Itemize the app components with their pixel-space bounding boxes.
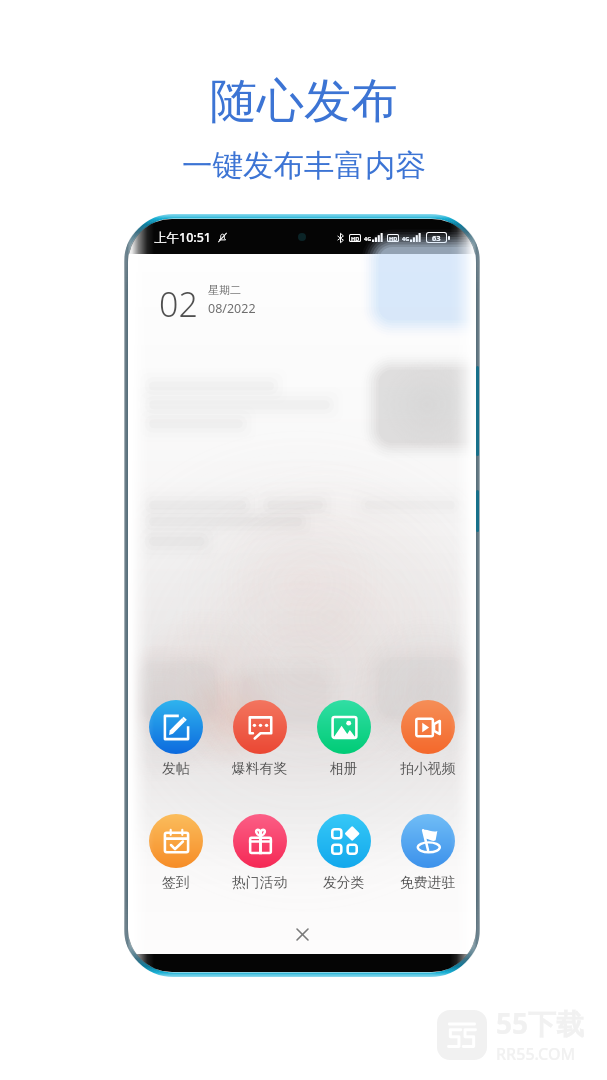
staticText: 63 [432, 233, 441, 242]
staticText: 热门活动 [232, 874, 288, 891]
staticText: 4G [402, 235, 410, 242]
button[interactable]: 拍小视频 [388, 700, 468, 777]
staticText: 拍小视频 [400, 760, 456, 777]
staticText: 08/2022 [208, 300, 256, 317]
button[interactable]: 爆料有奖 [220, 700, 300, 777]
staticText: 上午10:51 [154, 229, 212, 246]
staticText: 签到 [162, 874, 190, 891]
button[interactable]: 发分类 [304, 814, 384, 891]
staticText: 免费进驻 [400, 874, 456, 891]
button[interactable]: 签到 [136, 814, 216, 891]
button[interactable]: Close [128, 918, 476, 950]
button[interactable]: 免费进驻 [388, 814, 468, 891]
staticText: HD [351, 235, 360, 241]
button[interactable]: 热门活动 [220, 814, 300, 891]
button[interactable]: 发帖 [136, 700, 216, 777]
staticText: 星期二 [208, 283, 241, 297]
staticText: 一键发布丰富内容 [182, 147, 426, 185]
staticText: 55下载 [496, 1004, 585, 1042]
staticText: 发分类 [323, 874, 365, 891]
staticText: 4G [364, 235, 372, 242]
staticText: 02 [159, 281, 198, 327]
staticText: HD [389, 235, 398, 241]
staticText: 发帖 [162, 760, 190, 777]
staticText: RR55.COM [496, 1043, 576, 1065]
staticText: 随心发布 [210, 72, 398, 131]
button[interactable]: 相册 [304, 700, 384, 777]
staticText: 相册 [330, 760, 358, 777]
staticText: 爆料有奖 [232, 760, 288, 777]
